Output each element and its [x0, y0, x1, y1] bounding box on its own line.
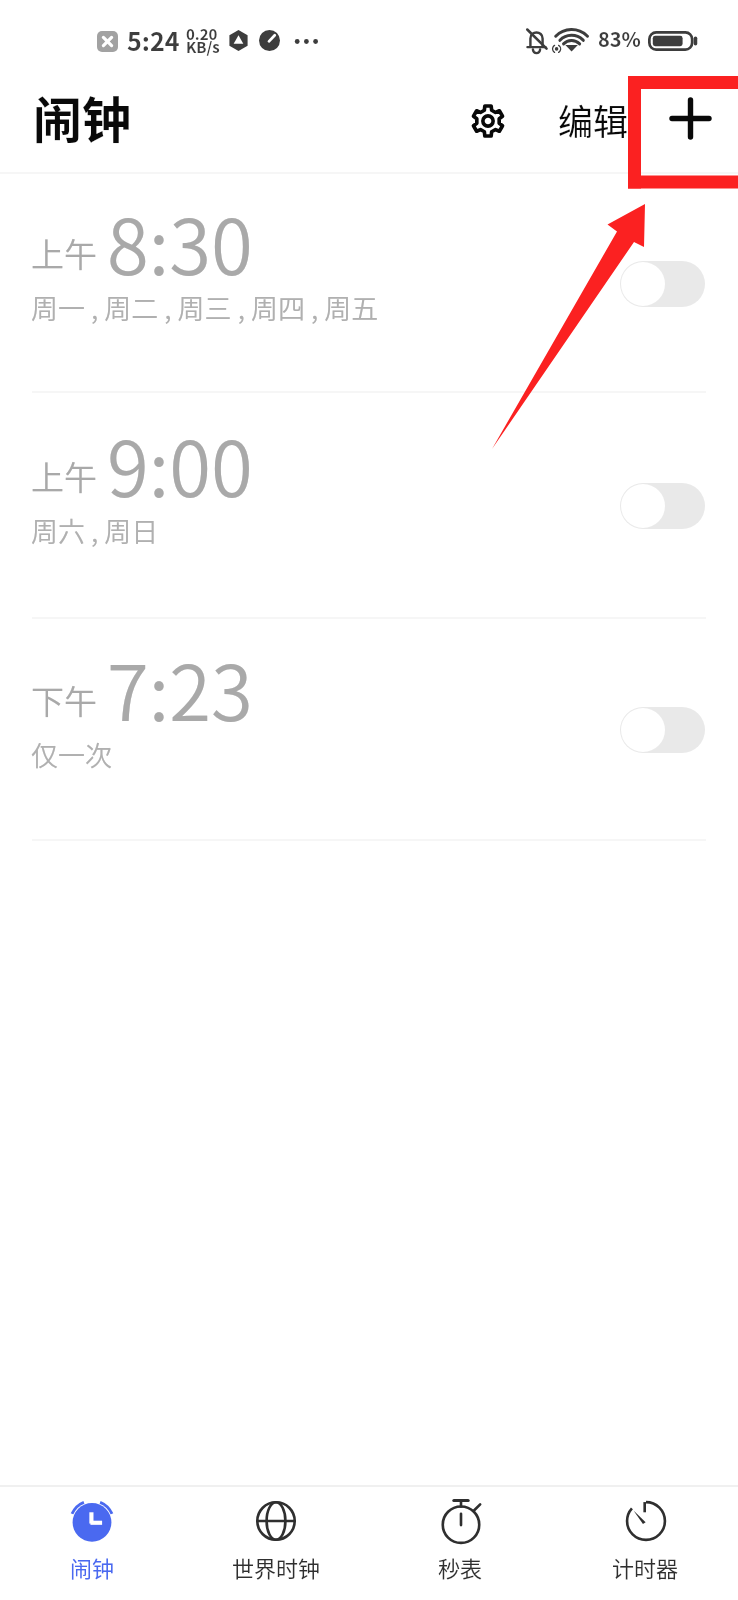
button[interactable]: 上午	[0, 174, 738, 393]
staticText: 周六 , 周日	[31, 511, 159, 550]
button[interactable]: 世界时钟	[184, 1485, 368, 1600]
staticText: KB/s	[186, 36, 220, 58]
button[interactable]: 闹钟开关	[620, 261, 705, 307]
staticText: 0.20	[186, 23, 218, 45]
button[interactable]: 闹钟开关	[620, 483, 705, 529]
staticText: 8:30	[107, 187, 253, 297]
staticText: 世界时钟	[232, 1551, 321, 1583]
staticText: 上午	[31, 229, 97, 277]
staticText: 周一 , 周二 , 周三 , 周四 , 周五	[31, 288, 379, 327]
button[interactable]: 上午	[0, 393, 738, 619]
button[interactable]: 设置	[452, 85, 524, 157]
staticText: 5:24	[127, 22, 180, 58]
staticText: 7:23	[107, 633, 253, 743]
button[interactable]: 下午	[0, 619, 738, 841]
staticText: 编辑	[558, 94, 629, 145]
staticText: 仅一次	[31, 735, 112, 774]
staticText: 闹钟	[70, 1551, 115, 1583]
button[interactable]: 闹钟开关	[620, 707, 705, 753]
button[interactable]: 计时器	[553, 1485, 738, 1600]
staticText: 秒表	[438, 1551, 483, 1583]
button[interactable]: 添加闹钟	[654, 82, 727, 155]
staticText: 计时器	[612, 1551, 679, 1583]
staticText: 9:00	[107, 409, 253, 519]
button[interactable]: 秒表	[368, 1485, 553, 1600]
staticText: 上午	[31, 452, 97, 500]
button[interactable]: 闹钟	[0, 1485, 184, 1600]
staticText: 闹钟	[33, 81, 132, 152]
button[interactable]: 编辑	[545, 84, 641, 154]
staticText: 下午	[31, 676, 97, 724]
staticText: 83%	[598, 24, 641, 53]
